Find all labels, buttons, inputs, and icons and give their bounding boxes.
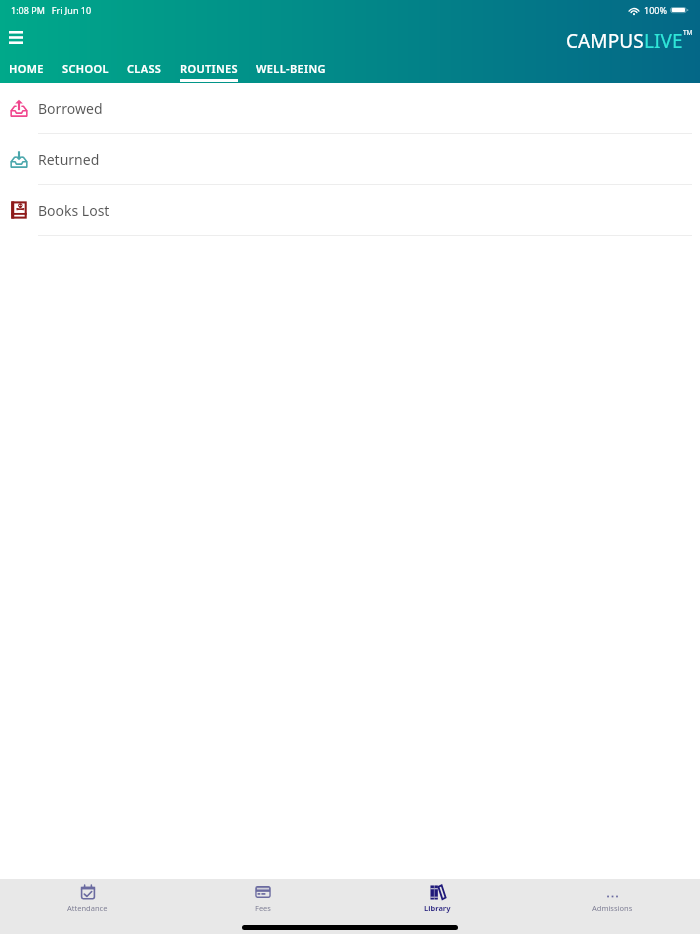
staticText: WELL-BEING	[256, 61, 326, 76]
staticText: ROUTINES	[180, 61, 238, 76]
button[interactable]: WELL-BEING	[247, 59, 335, 83]
button[interactable]: CLASS	[118, 59, 171, 83]
staticText: 1:08 PM Fri Jun 10	[11, 4, 92, 16]
staticText: 100%	[644, 4, 667, 16]
staticText: Borrowed	[38, 99, 103, 118]
staticText: LIVE	[644, 28, 683, 54]
staticText: TM	[683, 28, 693, 37]
staticText: CAMPUS	[566, 28, 644, 54]
button[interactable]: SCHOOL	[53, 59, 118, 83]
button[interactable]: Attendance	[0, 884, 175, 913]
button[interactable]: Menu	[0, 20, 31, 44]
staticText: Attendance	[67, 903, 108, 913]
staticText: HOME	[9, 61, 44, 76]
staticText: Books Lost	[38, 201, 110, 220]
button[interactable]: Library	[350, 884, 525, 913]
button[interactable]: Books Lost	[0, 185, 700, 236]
staticText: Fees	[255, 903, 271, 913]
button[interactable]: HOME	[0, 59, 53, 83]
staticText: CLASS	[127, 61, 162, 76]
button[interactable]: ROUTINES	[171, 59, 247, 83]
button[interactable]: Admissions	[525, 884, 700, 913]
staticText: Returned	[38, 150, 100, 169]
staticText: SCHOOL	[62, 61, 109, 76]
staticText: Library	[424, 903, 451, 913]
button[interactable]: Fees	[175, 884, 350, 913]
button[interactable]: Returned	[0, 134, 700, 185]
staticText: Admissions	[592, 903, 633, 913]
button[interactable]: Borrowed	[0, 83, 700, 134]
